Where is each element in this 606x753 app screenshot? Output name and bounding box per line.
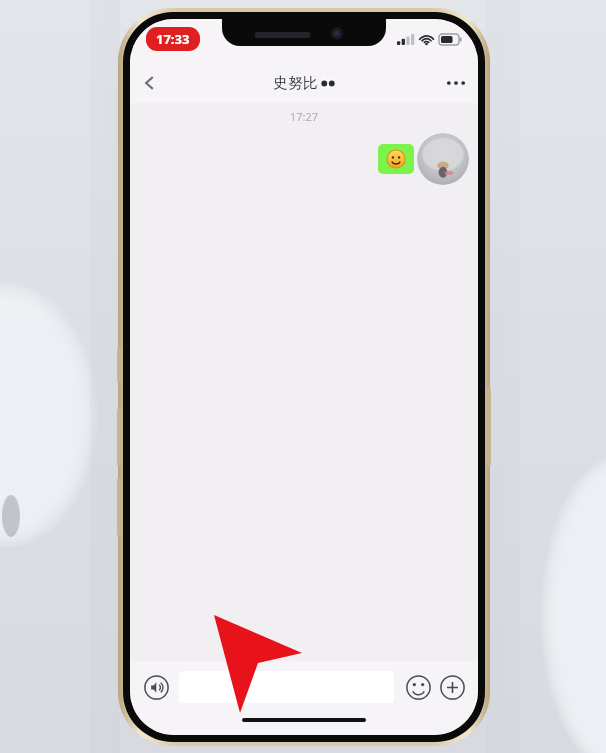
button[interactable]: Back	[130, 63, 170, 103]
button[interactable]: Emoji	[403, 672, 433, 702]
button[interactable]: Voice input	[141, 672, 171, 702]
staticText: 17:27	[130, 109, 478, 124]
staticText: 17:33	[156, 30, 190, 48]
button[interactable]: Message input	[179, 671, 394, 703]
button[interactable]	[378, 144, 414, 174]
button[interactable]: More functions	[437, 672, 467, 702]
staticText: 史努比	[273, 74, 318, 93]
button[interactable]: More options	[434, 63, 478, 103]
button[interactable]: Avatar	[417, 133, 469, 185]
